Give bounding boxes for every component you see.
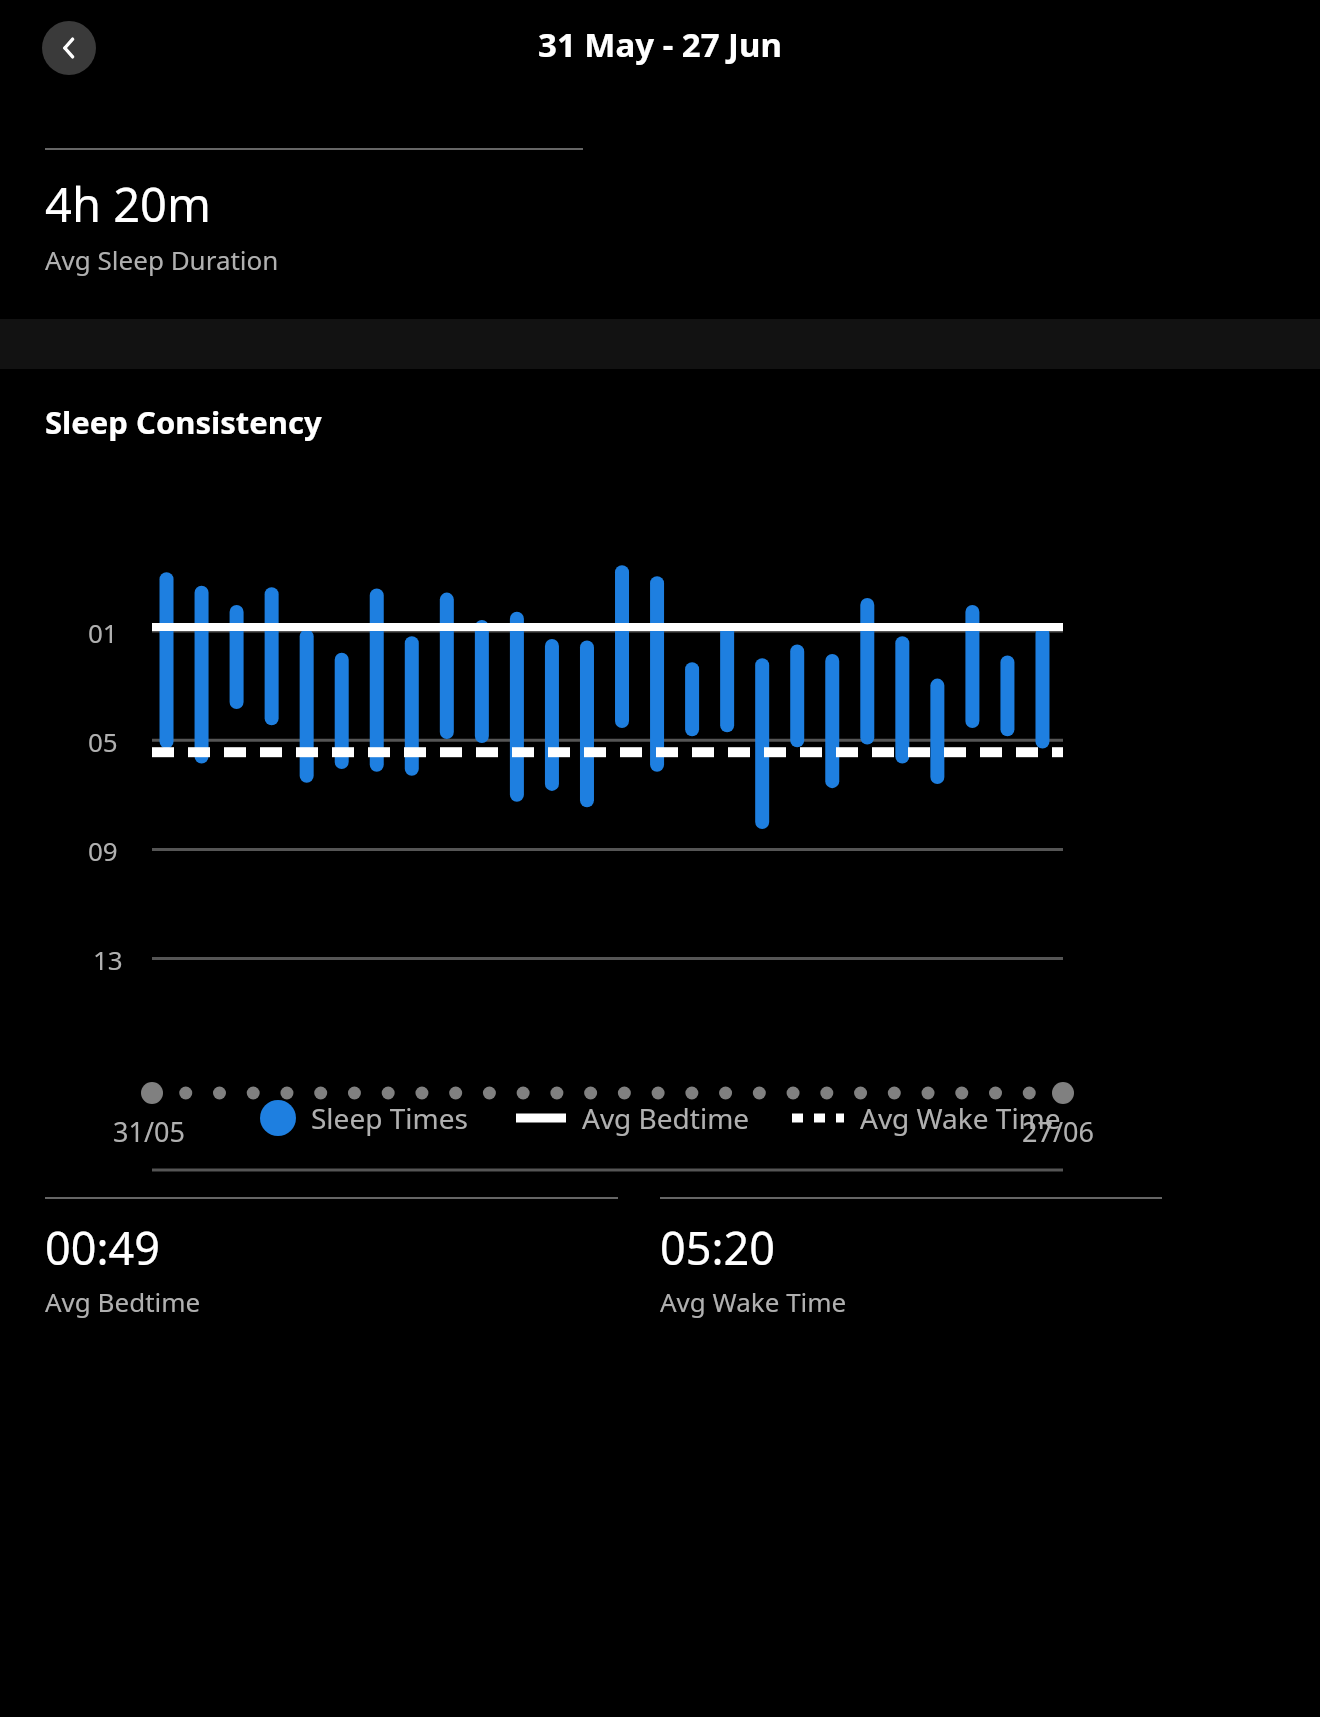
staticText: 4h 20m — [45, 172, 211, 236]
staticText: 05 — [88, 724, 118, 759]
staticText: 27/06 — [1022, 1113, 1094, 1150]
staticText: 00:49 — [45, 1217, 161, 1278]
staticText: 31 May - 27 Jun — [538, 22, 782, 67]
staticText: 09 — [88, 833, 118, 868]
staticText: 05:20 — [660, 1217, 776, 1278]
staticText: 01 — [88, 615, 118, 650]
button[interactable]: 05:20 — [660, 1197, 1162, 1319]
staticText: 31/05 — [113, 1113, 185, 1150]
button[interactable]: 00:49 — [45, 1197, 618, 1319]
staticText: 13 — [93, 942, 123, 977]
staticText: Avg Bedtime — [582, 1099, 750, 1137]
staticText: Avg Sleep Duration — [45, 242, 279, 277]
staticText: Avg Wake Time — [860, 1099, 1061, 1137]
button[interactable]: Back — [42, 21, 96, 75]
staticText: Avg Bedtime — [45, 1284, 201, 1319]
staticText: Sleep Consistency — [45, 401, 322, 443]
staticText: Avg Wake Time — [660, 1284, 847, 1319]
staticText: Sleep Times — [311, 1099, 468, 1137]
